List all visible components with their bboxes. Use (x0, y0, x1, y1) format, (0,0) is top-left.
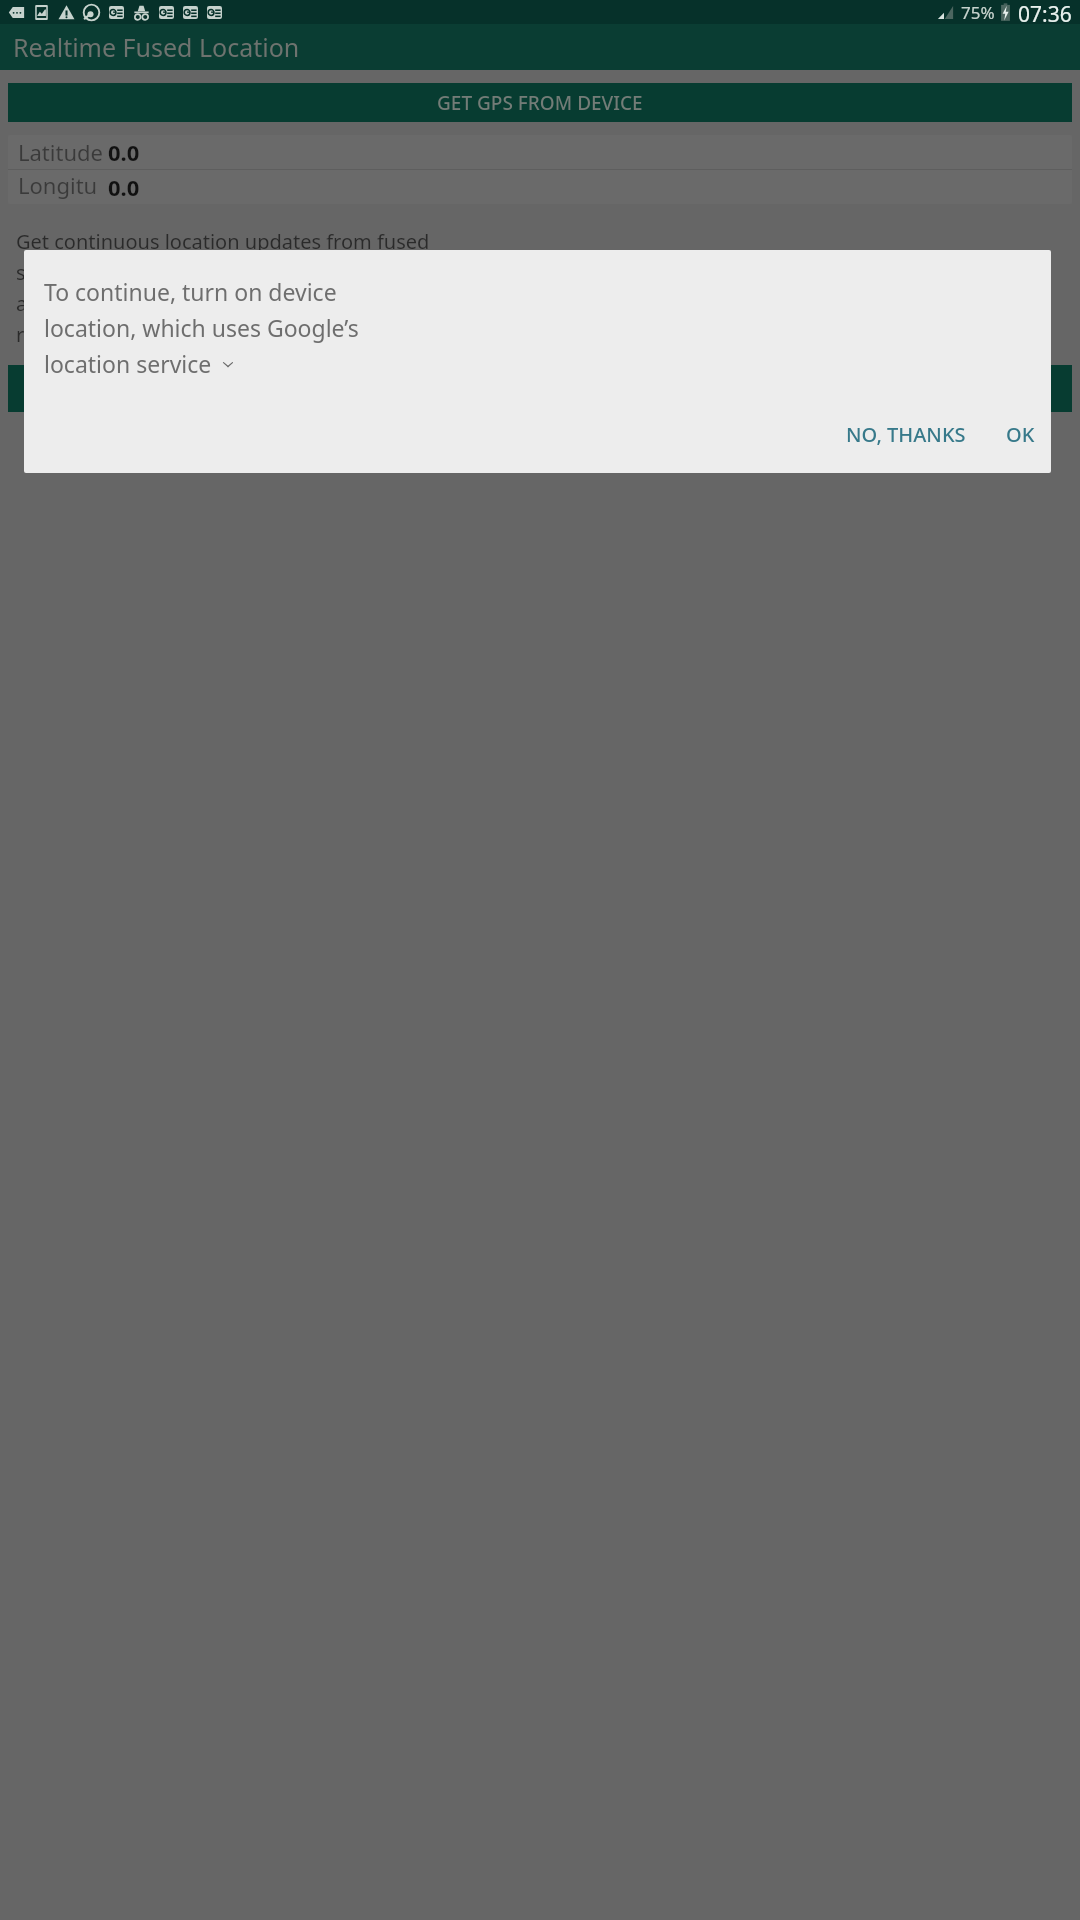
staticText: 07:36 (1018, 0, 1072, 24)
staticText: Realtime Fused Location (13, 30, 300, 64)
staticText: Longitude (18, 170, 108, 204)
staticText: location service (44, 348, 212, 379)
button[interactable]: Latitude (8, 135, 1072, 169)
staticText: GET GPS FROM DEVICE (437, 90, 643, 116)
staticText: received values are shown above. (16, 321, 330, 348)
button[interactable]: Longitude (8, 170, 1072, 204)
staticText: acknowledged using callbacks and the (16, 290, 376, 317)
staticText: Get continuous location updates from fus… (16, 228, 430, 255)
staticText: services provider. Location updates are (16, 259, 380, 286)
button[interactable]: GET GPS FROM DEVICE (8, 83, 1072, 122)
staticText: 0.0 (108, 172, 140, 202)
staticText: 0.0 (108, 137, 140, 167)
button[interactable]: NO, THANKS (838, 413, 974, 456)
staticText: To continue, turn on device (44, 276, 337, 307)
staticText: 75% (961, 1, 995, 24)
staticText: NO, THANKS (846, 421, 966, 448)
staticText: location, which uses Google’s (44, 312, 359, 343)
staticText: Latitude (18, 137, 103, 167)
button[interactable]: STOP LOCATION UPDATES (8, 365, 1072, 412)
staticText: OK (1006, 421, 1035, 448)
button[interactable]: OK (998, 413, 1043, 456)
